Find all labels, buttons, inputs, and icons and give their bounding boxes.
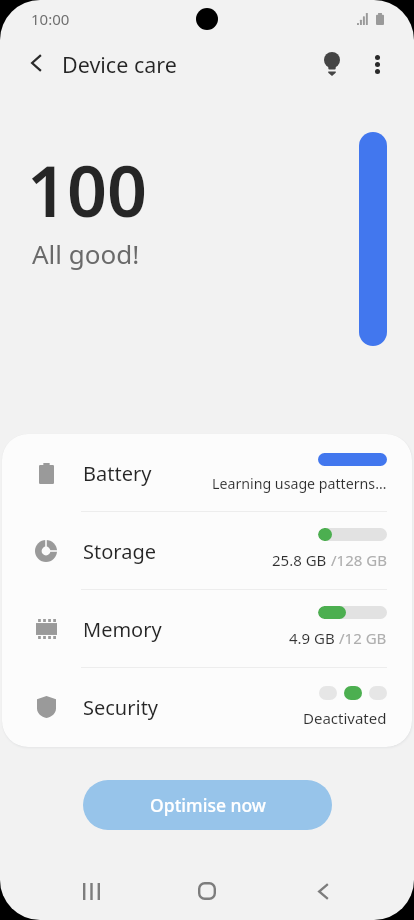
button[interactable]: Battery	[2, 434, 412, 512]
button[interactable]: Back	[265, 862, 381, 920]
button[interactable]: Tips	[310, 42, 354, 86]
staticText: Deactivated	[303, 708, 387, 728]
staticText: Security	[83, 694, 159, 721]
button[interactable]: Back	[14, 41, 58, 85]
staticText: 25.8 GB	[272, 550, 331, 570]
button[interactable]: Home	[149, 862, 265, 920]
staticText: Storage	[83, 538, 156, 565]
staticText: Battery	[83, 460, 152, 487]
staticText: 100	[27, 142, 148, 237]
staticText: 4.9 GB	[289, 628, 339, 648]
staticText: Memory	[83, 616, 162, 643]
staticText: Learning usage patterns…	[212, 474, 387, 493]
button[interactable]: Security	[2, 668, 412, 746]
staticText: Device care	[62, 50, 177, 79]
staticText: 10:00	[31, 9, 70, 29]
staticText: Optimise now	[150, 793, 266, 817]
button[interactable]: Storage	[2, 512, 412, 590]
button[interactable]: Memory	[2, 590, 412, 668]
button[interactable]: Optimise now	[83, 780, 332, 830]
button[interactable]: Recents	[33, 862, 149, 920]
staticText: /128 GB	[331, 550, 387, 570]
staticText: /12 GB	[339, 628, 387, 648]
button[interactable]: More options	[355, 42, 399, 86]
staticText: All good!	[32, 236, 140, 271]
